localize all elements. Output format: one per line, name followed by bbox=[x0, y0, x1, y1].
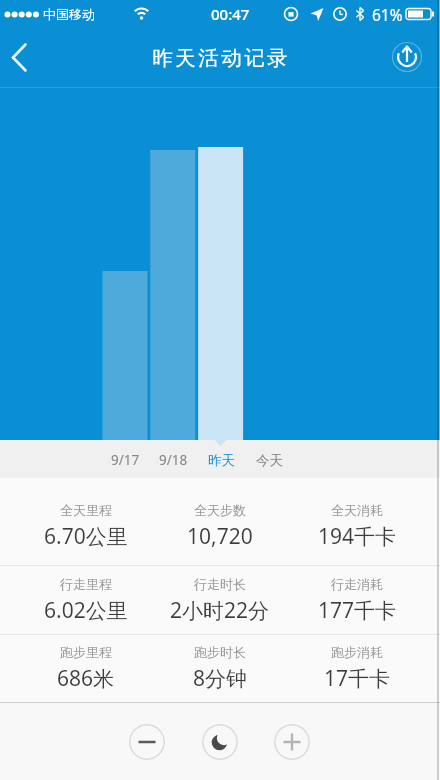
staticText: 6.02公里 bbox=[44, 596, 128, 625]
staticText: 行走消耗 bbox=[331, 576, 383, 592]
staticText: 今天 bbox=[256, 452, 283, 469]
staticText: 6.70公里 bbox=[44, 522, 128, 551]
button[interactable] bbox=[202, 724, 238, 760]
button[interactable]: 9/17 bbox=[95, 447, 155, 473]
staticText: 00:47 bbox=[211, 4, 250, 24]
staticText: 9/17 bbox=[111, 451, 140, 469]
staticText: 686米 bbox=[57, 664, 115, 693]
button[interactable] bbox=[385, 36, 429, 80]
button[interactable]: 今天 bbox=[239, 447, 299, 473]
staticText: 行走里程 bbox=[60, 576, 112, 592]
staticText: 跑步里程 bbox=[60, 644, 112, 660]
button[interactable]: 昨天 bbox=[191, 447, 251, 473]
staticText: 全天里程 bbox=[60, 502, 112, 518]
staticText: 中国移动 bbox=[43, 6, 95, 22]
staticText: 194千卡 bbox=[318, 522, 397, 551]
staticText: 10,720 bbox=[187, 522, 253, 551]
staticText: 行走时长 bbox=[194, 576, 246, 592]
staticText: 2小时22分 bbox=[170, 596, 270, 625]
staticText: 昨天 bbox=[208, 452, 235, 469]
button[interactable]: 9/18 bbox=[143, 447, 203, 473]
staticText: 跑步消耗 bbox=[331, 644, 383, 660]
staticText: 61% bbox=[372, 4, 403, 25]
staticText: 全天步数 bbox=[194, 502, 246, 518]
staticText: 177千卡 bbox=[318, 596, 397, 625]
staticText: 9/18 bbox=[159, 451, 188, 469]
button[interactable] bbox=[0, 28, 44, 88]
staticText: 17千卡 bbox=[324, 664, 391, 693]
staticText: 全天消耗 bbox=[331, 502, 383, 518]
staticText: 跑步时长 bbox=[194, 644, 246, 660]
staticText: 昨天活动记录 bbox=[151, 45, 289, 71]
staticText: 8分钟 bbox=[193, 664, 248, 693]
button[interactable] bbox=[129, 724, 165, 760]
button[interactable] bbox=[274, 724, 310, 760]
